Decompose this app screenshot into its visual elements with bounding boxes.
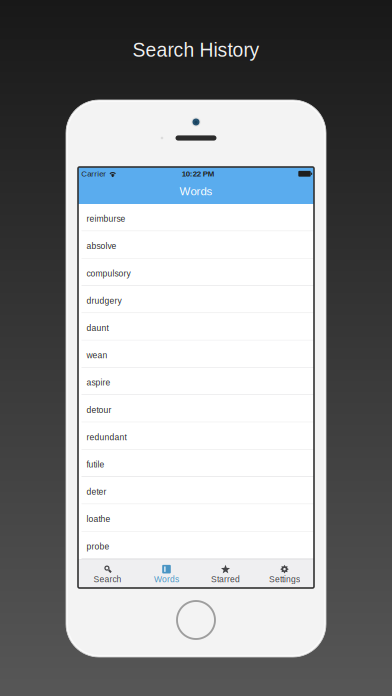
staticText: Carrier — [81, 169, 106, 178]
staticText: daunt — [87, 323, 109, 333]
button[interactable]: Search — [78, 559, 137, 588]
button[interactable]: drudgery — [78, 286, 314, 313]
button[interactable]: wean — [78, 340, 314, 368]
staticText: compulsory — [87, 269, 131, 278]
staticText: aspire — [87, 378, 111, 387]
button[interactable]: Starred — [196, 559, 255, 588]
staticText: Search — [93, 574, 121, 584]
button[interactable]: absolve — [78, 231, 314, 259]
button[interactable]: reimburse — [78, 204, 314, 231]
staticText: Words — [154, 574, 179, 584]
button[interactable]: aspire — [78, 368, 314, 395]
staticText: detour — [87, 405, 112, 415]
staticText: probe — [87, 542, 110, 551]
button[interactable]: futile — [78, 450, 314, 477]
staticText: reimburse — [87, 214, 126, 224]
button[interactable]: daunt — [78, 313, 314, 340]
staticText: redundant — [87, 432, 127, 442]
button[interactable]: Settings — [255, 559, 314, 588]
button[interactable]: probe — [78, 532, 314, 559]
button[interactable]: Words — [137, 559, 196, 588]
button[interactable]: compulsory — [78, 259, 314, 286]
staticText: futile — [87, 460, 105, 469]
staticText: wean — [87, 351, 108, 360]
staticText: loathe — [87, 514, 111, 524]
staticText: Starred — [211, 574, 240, 584]
staticText: absolve — [87, 241, 117, 251]
staticText: Settings — [269, 574, 300, 584]
button[interactable]: loathe — [78, 504, 314, 532]
staticText: deter — [87, 487, 107, 497]
staticText: Words — [179, 185, 212, 197]
button[interactable]: redundant — [78, 422, 314, 450]
staticText: drudgery — [87, 296, 122, 305]
staticText: 10:22 PM — [182, 169, 215, 178]
button[interactable]: detour — [78, 395, 314, 422]
button[interactable]: deter — [78, 477, 314, 504]
staticText: Search History — [132, 39, 259, 61]
